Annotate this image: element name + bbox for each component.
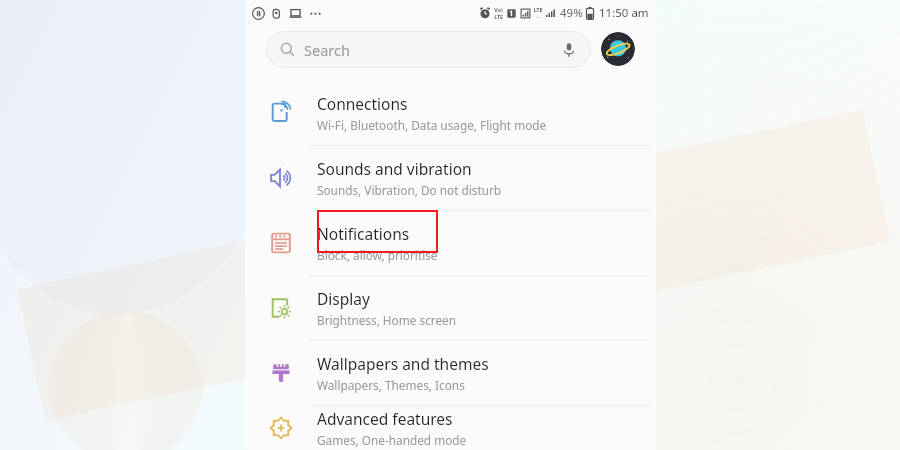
staticText: LTE	[533, 6, 543, 13]
staticText: Brightness, Home screen	[317, 312, 457, 328]
staticText: Search	[304, 40, 350, 60]
staticText: 11:50 am	[599, 5, 649, 21]
staticText: Sounds, Vibration, Do not disturb	[317, 182, 502, 198]
button[interactable]: Notifications	[245, 211, 656, 275]
staticText: Advanced features	[317, 408, 453, 429]
button[interactable]: Display	[245, 276, 656, 340]
staticText: LTE	[494, 13, 503, 20]
staticText: Display	[317, 288, 370, 309]
staticText: 49%	[560, 5, 583, 21]
button[interactable]: Account	[601, 32, 635, 66]
staticText: Notifications	[317, 223, 410, 244]
button[interactable]: Search	[266, 31, 591, 68]
staticText: Wallpapers, Themes, Icons	[317, 377, 465, 393]
staticText: Wi-Fi, Bluetooth, Data usage, Flight mod…	[317, 117, 547, 133]
staticText: Vo)	[494, 6, 503, 13]
staticText: ..	[537, 13, 540, 20]
button[interactable]: Advanced features	[245, 406, 656, 450]
staticText: Games, One-handed mode	[317, 432, 467, 448]
staticText: Block, allow, prioritise	[317, 247, 438, 263]
button[interactable]: Sounds and vibration	[245, 146, 656, 210]
staticText: Connections	[317, 93, 408, 114]
button[interactable]: Connections	[245, 81, 656, 145]
button[interactable]: Voice search	[561, 42, 577, 58]
button[interactable]: Wallpapers and themes	[245, 341, 656, 405]
staticText: Wallpapers and themes	[317, 353, 489, 374]
staticText: Sounds and vibration	[317, 158, 472, 179]
